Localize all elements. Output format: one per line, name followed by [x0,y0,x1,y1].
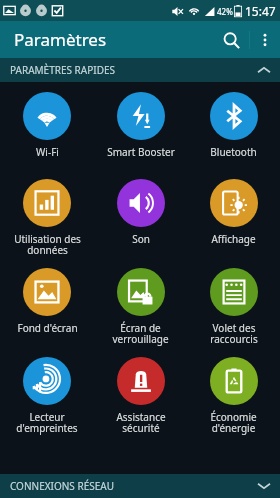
button[interactable]: CONNEXIONS RÉSEAU [0,474,280,498]
button[interactable]: Smart Booster [94,88,187,175]
staticText: Paramètres [14,28,107,51]
button[interactable]: Bluetooth [187,88,280,175]
button[interactable]: Wi-Fi [0,88,94,175]
staticText: Économie d'énergie [210,410,257,435]
staticText: 42% [217,6,233,17]
staticText: CONNEXIONS RÉSEAU [10,479,114,493]
staticText: Assistance sécurité [116,410,166,435]
button[interactable]: Volet des raccourcis [187,264,280,353]
staticText: Bluetooth [210,145,257,159]
staticText: PARAMÈTRES RAPIDES [10,63,116,77]
staticText: Écran de verrouillage [112,321,169,346]
staticText: Smart Booster [107,145,175,159]
button[interactable]: Utilisation des données [0,175,94,264]
button[interactable]: Lecteur d'empreintes [0,353,94,442]
staticText: Fond d'écran [17,321,78,335]
button[interactable]: Écran de verrouillage [94,264,187,353]
button[interactable]: Fond d'écran [0,264,94,353]
staticText: Volet des raccourcis [210,321,258,346]
staticText: Wi-Fi [36,145,59,159]
staticText: Utilisation des données [14,232,81,257]
button[interactable]: Assistance sécurité [94,353,187,442]
staticText: Affichage [211,232,256,246]
staticText: 15:47 [245,3,276,19]
button[interactable]: More options [250,25,280,55]
button[interactable]: Économie d'énergie [187,353,280,442]
button[interactable]: Affichage [187,175,280,264]
staticText: Son [132,232,150,246]
staticText: Lecteur d'empreintes [16,410,78,435]
button[interactable]: PARAMÈTRES RAPIDES [0,58,280,82]
button[interactable]: Search [213,22,249,58]
button[interactable]: Son [94,175,187,264]
